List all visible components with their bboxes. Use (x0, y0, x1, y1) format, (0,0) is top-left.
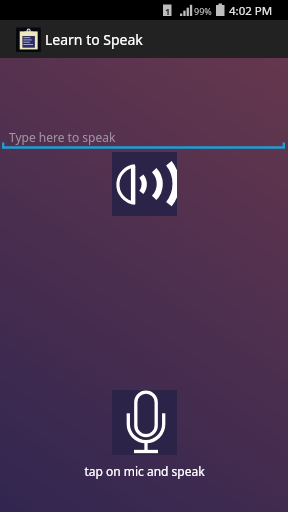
staticText: 1 (165, 5, 171, 17)
staticText: tap on mic and speak (84, 463, 205, 479)
staticText: Learn to Speak (45, 30, 143, 49)
staticText: 4:02 PM (229, 3, 273, 19)
button[interactable]: Microphone (112, 390, 177, 455)
button[interactable] (0, 118, 288, 150)
staticText: Type here to speak (9, 129, 116, 145)
button[interactable]: Learn to Speak (0, 20, 288, 58)
button[interactable]: Play speech (112, 152, 177, 216)
staticText: 99% (194, 5, 212, 17)
